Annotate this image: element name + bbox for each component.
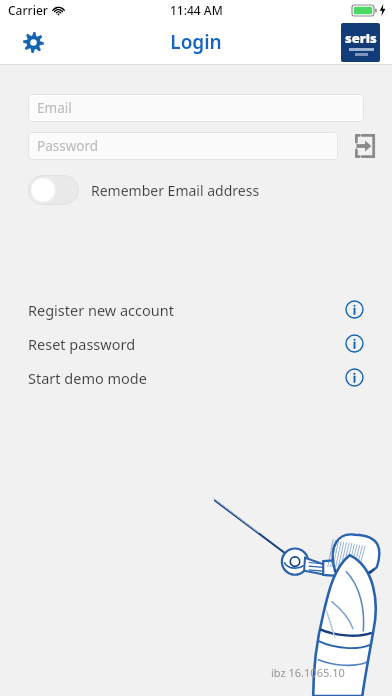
staticText: 11:44 AM: [170, 2, 223, 18]
button[interactable]: Start demo mode: [0, 365, 392, 390]
button[interactable]: Seris logo: [341, 23, 380, 62]
button[interactable]: Reset password: [0, 331, 392, 356]
staticText: Password: [37, 137, 99, 155]
staticText: seris: [345, 29, 377, 47]
button[interactable]: Settings: [16, 25, 50, 59]
staticText: ibz 16.1065.10: [271, 665, 345, 680]
staticText: Remember Email address: [91, 181, 260, 200]
staticText: Register new account: [28, 300, 174, 320]
button[interactable]: Log in: [350, 130, 382, 162]
button[interactable]: Register new account: [0, 297, 392, 322]
button[interactable]: Email: [28, 94, 364, 122]
staticText: Start demo mode: [28, 368, 147, 388]
button[interactable]: Remember Email address: [28, 175, 392, 205]
button[interactable]: Password: [28, 132, 338, 160]
staticText: Carrier: [8, 2, 48, 18]
staticText: Email: [37, 99, 72, 117]
staticText: Reset password: [28, 334, 136, 354]
staticText: Login: [170, 29, 222, 55]
